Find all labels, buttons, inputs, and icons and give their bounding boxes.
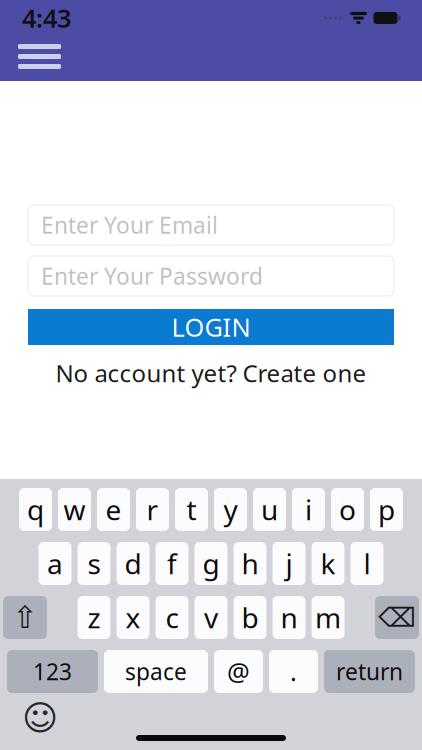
staticText: m: [315, 599, 341, 636]
staticText: u: [261, 491, 278, 528]
staticText: j: [285, 545, 292, 582]
button[interactable]: k: [311, 542, 344, 585]
staticText: e: [105, 491, 121, 528]
staticText: y: [223, 491, 237, 528]
staticText: w: [63, 491, 85, 528]
button[interactable]: m: [311, 596, 344, 639]
staticText: l: [363, 545, 370, 582]
button[interactable]: .: [269, 650, 318, 693]
button[interactable]: 123: [7, 650, 98, 693]
staticText: r: [146, 491, 158, 528]
button[interactable]: o: [331, 488, 364, 531]
staticText: No account yet? Create one: [55, 357, 366, 389]
button[interactable]: p: [370, 488, 403, 531]
button[interactable]: s: [77, 542, 110, 585]
staticText: h: [241, 545, 258, 582]
button[interactable]: i: [292, 488, 325, 531]
button[interactable]: space: [104, 650, 208, 693]
staticText: ⌫: [378, 602, 416, 633]
button[interactable]: r: [136, 488, 169, 531]
staticText: k: [320, 545, 335, 582]
staticText: z: [87, 599, 100, 636]
staticText: g: [202, 545, 219, 582]
button[interactable]: v: [194, 596, 227, 639]
staticText: LOGIN: [171, 310, 250, 344]
button[interactable]: h: [233, 542, 266, 585]
staticText: s: [87, 545, 100, 582]
staticText: 123: [33, 656, 72, 686]
staticText: o: [339, 491, 356, 528]
staticText: @: [227, 655, 250, 688]
staticText: return: [336, 656, 403, 686]
button[interactable]: No account yet? Create one: [55, 357, 366, 389]
staticText: i: [305, 491, 312, 528]
button[interactable]: q: [19, 488, 52, 531]
button[interactable]: w: [58, 488, 91, 531]
button[interactable]: LOGIN: [28, 309, 394, 345]
staticText: t: [186, 491, 196, 528]
button[interactable]: z: [77, 596, 110, 639]
staticText: c: [165, 599, 178, 636]
staticText: 4:43: [22, 1, 71, 35]
staticText: .: [290, 655, 297, 688]
button[interactable]: Emoji: [20, 701, 60, 735]
staticText: Enter Your Email: [41, 210, 218, 240]
button[interactable]: n: [272, 596, 305, 639]
staticText: x: [125, 599, 140, 636]
staticText: v: [204, 599, 218, 636]
button[interactable]: return: [324, 650, 415, 693]
staticText: f: [167, 545, 177, 582]
button[interactable]: e: [97, 488, 130, 531]
button[interactable]: d: [116, 542, 149, 585]
button[interactable]: b: [233, 596, 266, 639]
button[interactable]: Delete: [375, 596, 419, 639]
button[interactable]: a: [38, 542, 71, 585]
staticText: a: [47, 545, 63, 582]
staticText: p: [378, 491, 395, 528]
staticText: ⇧: [12, 600, 38, 635]
staticText: q: [27, 491, 44, 528]
button[interactable]: g: [194, 542, 227, 585]
button[interactable]: j: [272, 542, 305, 585]
button[interactable]: x: [116, 596, 149, 639]
button[interactable]: @: [214, 650, 263, 693]
button[interactable]: Menu: [0, 36, 79, 77]
button[interactable]: l: [350, 542, 383, 585]
button[interactable]: y: [214, 488, 247, 531]
staticText: n: [280, 599, 297, 636]
staticText: Enter Your Password: [41, 261, 263, 291]
button[interactable]: c: [155, 596, 188, 639]
staticText: d: [124, 545, 141, 582]
button[interactable]: t: [175, 488, 208, 531]
staticText: b: [241, 599, 258, 636]
button[interactable]: Shift: [3, 596, 47, 639]
staticText: space: [125, 656, 187, 686]
button[interactable]: f: [155, 542, 188, 585]
staticText: ☺: [22, 698, 58, 738]
button[interactable]: u: [253, 488, 286, 531]
